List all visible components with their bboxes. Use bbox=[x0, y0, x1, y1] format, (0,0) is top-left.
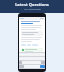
button[interactable]: Enter bbox=[40, 65, 45, 68]
button[interactable]: Accepted answer bbox=[22, 48, 42, 52]
other: Accepted answer bbox=[22, 49, 24, 51]
button[interactable] bbox=[22, 32, 42, 35]
staticText: for Stackoverflow bbox=[24, 8, 41, 11]
staticText: Latest Questions bbox=[15, 2, 49, 7]
